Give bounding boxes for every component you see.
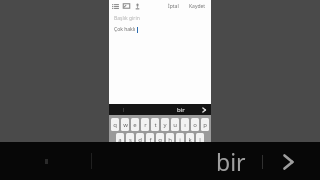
button[interactable]: h bbox=[166, 133, 174, 146]
staticText: İptal bbox=[168, 3, 179, 10]
button[interactable]: g bbox=[156, 133, 164, 146]
button[interactable]: o bbox=[191, 118, 199, 131]
staticText: w bbox=[123, 121, 128, 129]
button[interactable]: bir bbox=[177, 106, 185, 114]
staticText: l bbox=[199, 136, 201, 144]
staticText: p bbox=[203, 121, 207, 129]
staticText: g bbox=[158, 136, 162, 144]
staticText: u bbox=[173, 121, 177, 129]
button[interactable]: p bbox=[201, 118, 209, 131]
staticText: k bbox=[188, 136, 192, 144]
staticText: j bbox=[179, 136, 181, 144]
button[interactable]: l bbox=[196, 133, 204, 146]
staticText: Başlık girin bbox=[114, 15, 140, 22]
staticText: f bbox=[149, 136, 152, 144]
staticText: h bbox=[168, 136, 172, 144]
button[interactable]: y bbox=[161, 118, 169, 131]
button[interactable]: Kaydet bbox=[186, 2, 209, 11]
button[interactable]: k bbox=[186, 133, 194, 146]
button[interactable]: r bbox=[141, 118, 149, 131]
button[interactable]: a bbox=[116, 133, 124, 146]
staticText: d bbox=[138, 136, 142, 144]
staticText: bir bbox=[216, 146, 246, 177]
button[interactable]: Bullet list bbox=[111, 2, 120, 10]
staticText: Çok haklı bbox=[114, 26, 136, 33]
button[interactable]: f bbox=[146, 133, 154, 146]
button[interactable]: s bbox=[126, 133, 134, 146]
button[interactable]: ı bbox=[181, 118, 189, 131]
button[interactable]: u bbox=[171, 118, 179, 131]
button[interactable]: İptal bbox=[165, 2, 182, 11]
staticText: s bbox=[129, 136, 132, 144]
staticText: q bbox=[113, 121, 117, 129]
staticText: y bbox=[163, 121, 167, 129]
staticText: t bbox=[154, 121, 157, 129]
staticText: a bbox=[118, 136, 122, 144]
button[interactable]: Voice note bbox=[133, 2, 142, 10]
button[interactable]: t bbox=[151, 118, 159, 131]
button[interactable]: Başlık girin bbox=[109, 15, 211, 22]
button[interactable]: More suggestions bbox=[277, 151, 299, 173]
staticText: o bbox=[193, 121, 197, 129]
staticText: e bbox=[133, 121, 137, 129]
button[interactable]: d bbox=[136, 133, 144, 146]
staticText: Kaydet bbox=[189, 3, 206, 10]
staticText: r bbox=[144, 121, 147, 129]
button[interactable]: More suggestions bbox=[200, 106, 208, 114]
button[interactable]: e bbox=[131, 118, 139, 131]
button[interactable]: j bbox=[176, 133, 184, 146]
button[interactable]: w bbox=[121, 118, 129, 131]
button[interactable]: Çok haklı bbox=[109, 26, 211, 33]
button[interactable]: Insert image bbox=[122, 2, 131, 10]
button[interactable]: q bbox=[111, 118, 119, 131]
staticText: ı bbox=[184, 121, 186, 129]
